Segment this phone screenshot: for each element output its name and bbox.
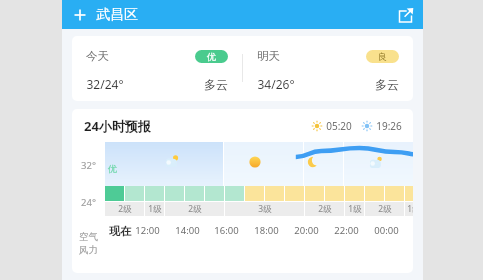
- staticText: 2级: [318, 203, 332, 215]
- button[interactable]: 今天: [72, 36, 413, 101]
- button[interactable]: 优: [105, 142, 413, 264]
- button[interactable]: Add city: [71, 6, 89, 24]
- staticText: 现在: [109, 224, 131, 238]
- staticText: 武昌区: [96, 6, 138, 24]
- staticText: 良: [378, 51, 387, 62]
- staticText: 22:00: [334, 224, 359, 237]
- staticText: 24小时预报: [84, 117, 151, 135]
- staticText: 多云: [375, 77, 399, 92]
- button[interactable]: Share: [394, 4, 416, 26]
- staticText: 1级: [348, 203, 362, 215]
- staticText: 风力: [79, 244, 98, 256]
- staticText: 优: [108, 163, 117, 174]
- staticText: 20:00: [294, 224, 319, 237]
- staticText: 优: [207, 51, 216, 62]
- staticText: 32°: [81, 159, 96, 172]
- staticText: 2级: [188, 203, 202, 215]
- staticText: 1级: [148, 203, 162, 215]
- staticText: 多云: [204, 77, 228, 92]
- staticText: 18:00: [254, 224, 279, 237]
- staticText: 14:00: [175, 224, 200, 237]
- staticText: 2级: [378, 203, 392, 215]
- staticText: 1级: [407, 203, 413, 215]
- staticText: 空气: [79, 231, 98, 243]
- staticText: 3级: [258, 203, 272, 215]
- staticText: 2级: [118, 203, 132, 215]
- staticText: 明天: [257, 49, 280, 63]
- staticText: 16:00: [214, 224, 239, 237]
- staticText: 32/24°: [86, 76, 124, 92]
- staticText: 34/26°: [257, 76, 295, 92]
- staticText: 12:00: [135, 224, 160, 237]
- staticText: 05:20: [326, 119, 352, 133]
- staticText: 今天: [86, 49, 109, 63]
- staticText: 24°: [81, 196, 96, 209]
- staticText: 00:00: [374, 224, 399, 237]
- staticText: 19:26: [376, 119, 402, 133]
